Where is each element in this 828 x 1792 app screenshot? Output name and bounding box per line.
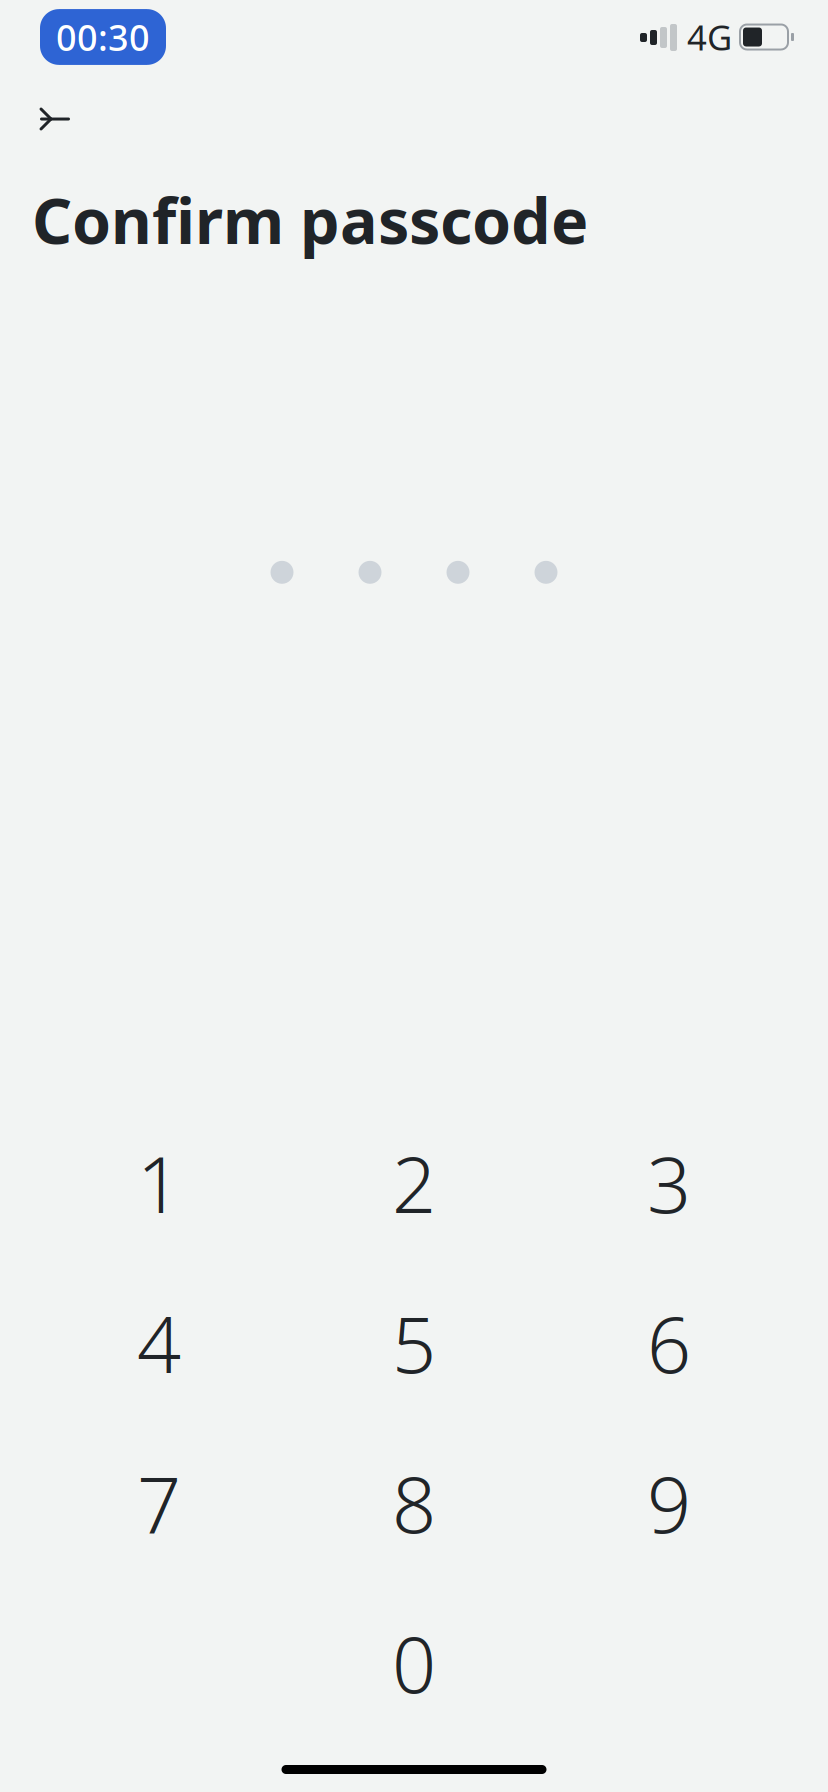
- button[interactable]: 7: [49, 1423, 269, 1583]
- button[interactable]: 3: [559, 1103, 779, 1263]
- button[interactable]: 6: [559, 1263, 779, 1423]
- staticText: 4G: [687, 14, 732, 60]
- staticText: 3: [647, 1132, 691, 1234]
- button[interactable]: 0: [304, 1583, 524, 1743]
- staticText: 2: [392, 1132, 436, 1234]
- button[interactable]: 8: [304, 1423, 524, 1583]
- button[interactable]: 5: [304, 1263, 524, 1423]
- staticText: 00:30: [56, 13, 150, 61]
- staticText: 7: [137, 1452, 181, 1554]
- staticText: 1: [137, 1132, 181, 1234]
- staticText: 0: [392, 1612, 436, 1714]
- staticText: 8: [392, 1452, 436, 1554]
- button[interactable]: 2: [304, 1103, 524, 1263]
- button[interactable]: Back: [18, 88, 88, 150]
- staticText: 9: [647, 1452, 691, 1554]
- staticText: Confirm passcode: [32, 178, 588, 261]
- staticText: 6: [647, 1292, 691, 1394]
- button[interactable]: 9: [559, 1423, 779, 1583]
- staticText: 4: [137, 1292, 181, 1394]
- button[interactable]: 1: [49, 1103, 269, 1263]
- staticText: 5: [392, 1292, 436, 1394]
- button[interactable]: 4: [49, 1263, 269, 1423]
